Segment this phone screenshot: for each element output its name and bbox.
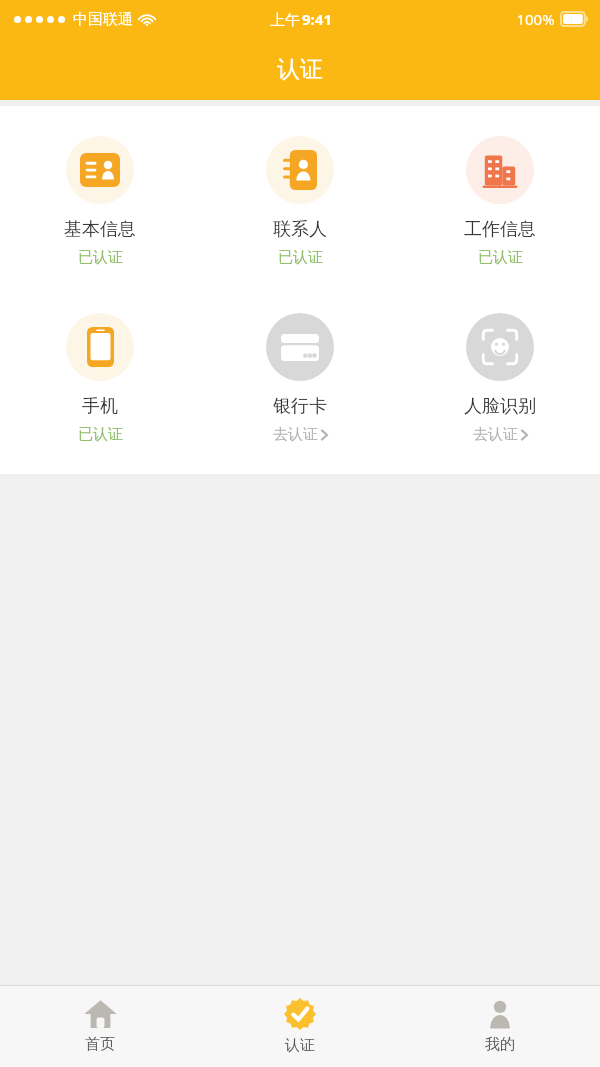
staticText: 银行卡 (273, 395, 327, 418)
staticText: 上午 (268, 9, 302, 29)
staticText: 已认证 (78, 248, 123, 267)
staticText: 100% (516, 9, 555, 29)
button[interactable]: Verification (200, 986, 400, 1067)
staticText: 工作信息 (464, 218, 536, 241)
staticText: 去认证 (473, 425, 518, 444)
staticText: 我的 (485, 1035, 515, 1054)
button[interactable]: 联系人 (200, 132, 400, 271)
staticText: 已认证 (78, 425, 123, 444)
staticText: 联系人 (273, 218, 327, 241)
staticText: 人脸识别 (464, 395, 536, 418)
staticText: 9:41 (302, 9, 332, 29)
staticText: 去认证 (273, 425, 318, 444)
button[interactable]: 人脸识别 (400, 309, 600, 448)
button[interactable]: 基本信息 (0, 132, 200, 271)
staticText: 认证 (285, 1036, 315, 1055)
staticText: 首页 (85, 1035, 115, 1054)
staticText: 已认证 (278, 248, 323, 267)
button[interactable]: 手机 (0, 309, 200, 448)
staticText: 中国联通 (73, 10, 133, 29)
staticText: 基本信息 (64, 218, 136, 241)
staticText: 认证 (277, 55, 323, 84)
button[interactable]: 工作信息 (400, 132, 600, 271)
button[interactable]: Profile (400, 986, 600, 1067)
staticText: 手机 (82, 395, 118, 418)
button[interactable]: 银行卡 (200, 309, 400, 448)
staticText: 已认证 (478, 248, 523, 267)
button[interactable]: Home (0, 986, 200, 1067)
